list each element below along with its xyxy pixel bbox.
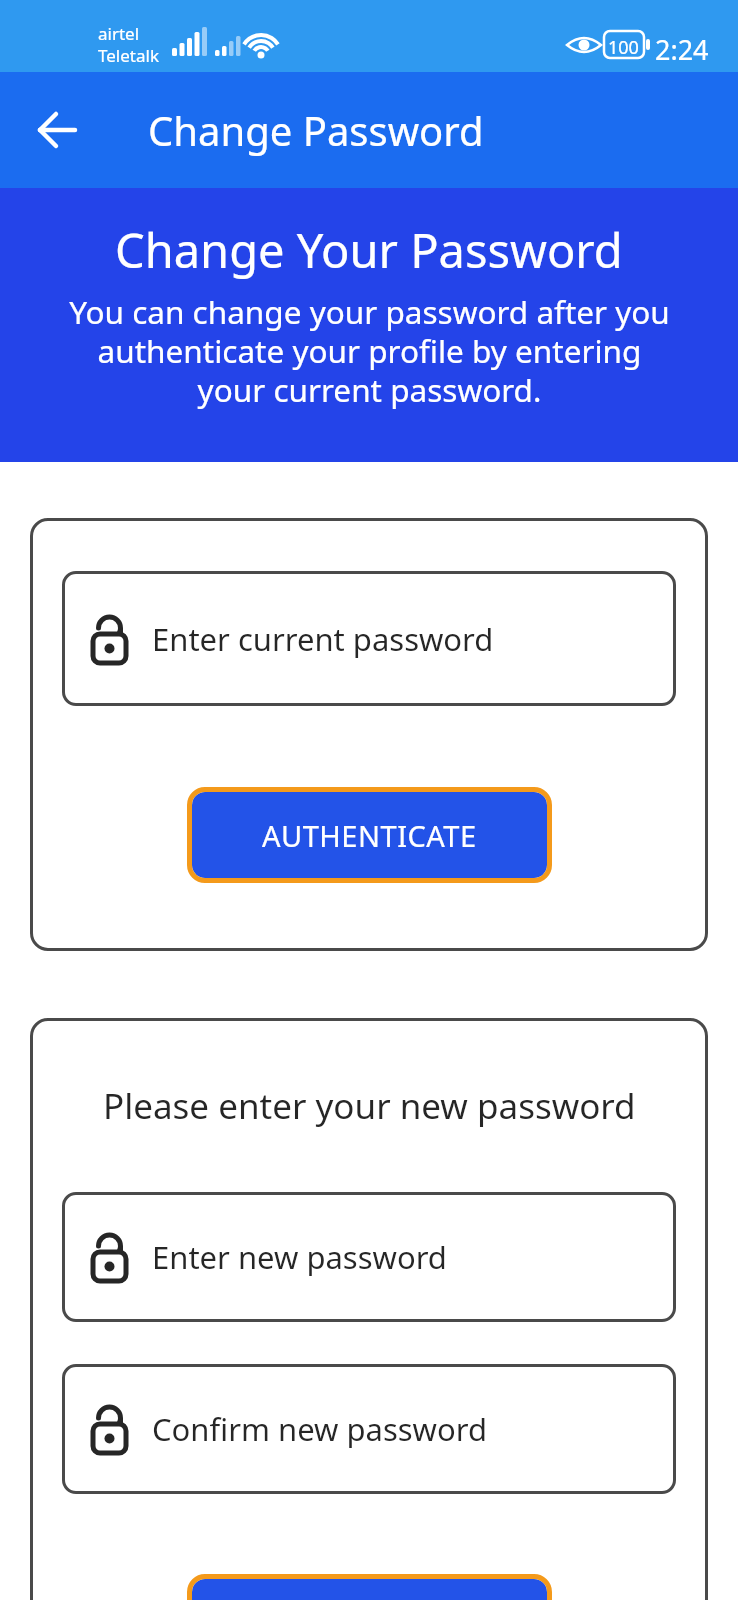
staticText: Please enter your new password	[103, 1082, 636, 1130]
button[interactable]: Enter current password	[62, 571, 676, 706]
button[interactable]: UPDATE PASSWORD	[192, 1579, 547, 1600]
staticText: AUTHENTICATE	[262, 816, 477, 855]
staticText: Change Password	[148, 103, 484, 157]
staticText: Enter new password	[152, 1236, 447, 1278]
staticText: Change Your Password	[115, 218, 623, 282]
staticText: Enter current password	[152, 618, 494, 660]
staticText: You can change your password after you a…	[69, 290, 670, 411]
staticText: 2:24	[655, 31, 709, 68]
button[interactable]: Enter new password	[62, 1192, 676, 1322]
staticText: Confirm new password	[152, 1408, 487, 1450]
staticText: airtel Teletalk	[98, 22, 159, 67]
staticText: 100	[608, 35, 639, 60]
button[interactable]: AUTHENTICATE	[192, 792, 547, 878]
button[interactable]	[28, 100, 88, 160]
button[interactable]: Confirm new password	[62, 1364, 676, 1494]
